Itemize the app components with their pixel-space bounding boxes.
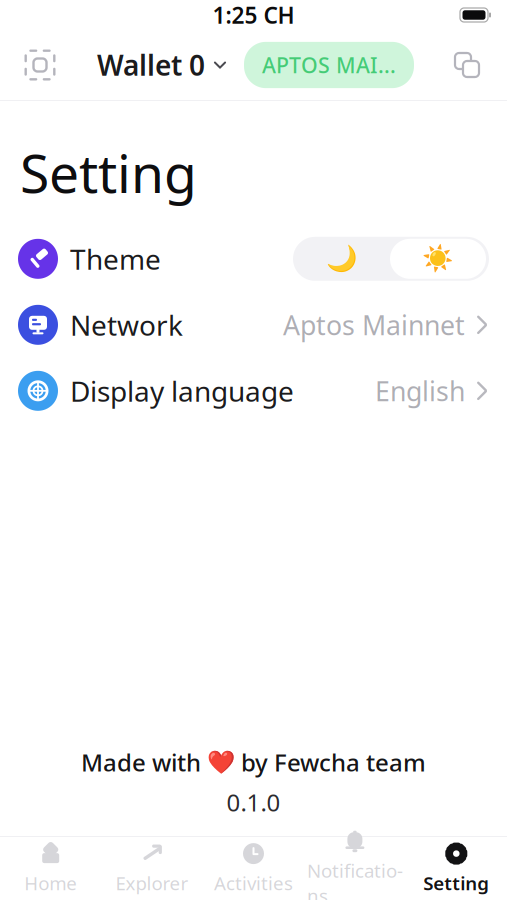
staticText: 🌙 [326, 244, 358, 273]
staticText: Display language [70, 372, 294, 409]
staticText: Network [70, 306, 183, 343]
button[interactable]: Setting [406, 837, 507, 900]
button[interactable]: Network [0, 292, 507, 358]
staticText: 1:25 CH [212, 0, 294, 30]
staticText: APTOS MAI... [262, 51, 396, 79]
staticText: ☀️ [422, 244, 454, 273]
staticText: Setting [20, 137, 197, 208]
button[interactable]: Activities [203, 837, 304, 900]
button[interactable]: Light theme [390, 239, 486, 279]
staticText: Notifications [307, 858, 403, 900]
button[interactable]: Dark theme [294, 237, 390, 281]
button[interactable]: APTOS MAI... [244, 42, 414, 88]
staticText: Setting [423, 871, 489, 895]
button[interactable]: Scan QR code [12, 37, 68, 93]
staticText: Made with [81, 746, 201, 778]
button[interactable]: Home [0, 837, 101, 900]
button[interactable]: Wallet 0 [93, 38, 232, 92]
staticText: English [375, 373, 465, 408]
staticText: Aptos Mainnet [283, 307, 465, 342]
staticText: Theme [70, 240, 161, 277]
staticText: Home [24, 871, 77, 895]
button[interactable]: Copy address [439, 37, 495, 93]
staticText: by Fewcha team [241, 746, 426, 778]
staticText: 0.1.0 [226, 786, 280, 818]
button[interactable]: Notifications [304, 837, 406, 900]
staticText: Activities [214, 871, 293, 895]
staticText: Explorer [116, 871, 189, 895]
button[interactable]: Display language [0, 358, 507, 424]
staticText: ❤️ [207, 749, 235, 775]
staticText: Wallet 0 [97, 46, 205, 84]
button[interactable]: Explorer [101, 837, 203, 900]
